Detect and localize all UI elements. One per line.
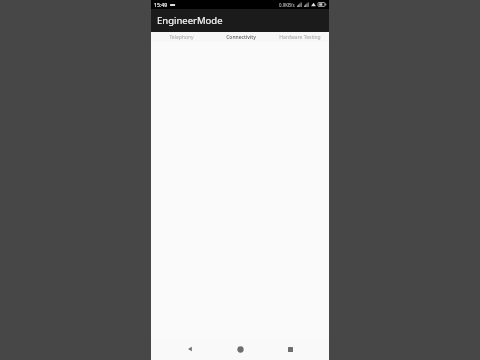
- button[interactable]: Home: [229, 338, 251, 360]
- staticText: 15:49: [154, 1, 168, 8]
- button[interactable]: Hardware Testing: [270, 32, 329, 42]
- staticText: 0.9KB/s: [279, 2, 295, 8]
- staticText: Connectivity: [226, 34, 256, 41]
- button[interactable]: Back: [179, 338, 201, 360]
- staticText: Telephony: [169, 34, 194, 41]
- button[interactable]: Telephony: [151, 32, 211, 42]
- button[interactable]: Recent apps: [279, 338, 301, 360]
- button[interactable]: Connectivity: [211, 32, 270, 42]
- staticText: EngineerMode: [157, 14, 223, 27]
- staticText: Hardware Testing: [279, 34, 321, 41]
